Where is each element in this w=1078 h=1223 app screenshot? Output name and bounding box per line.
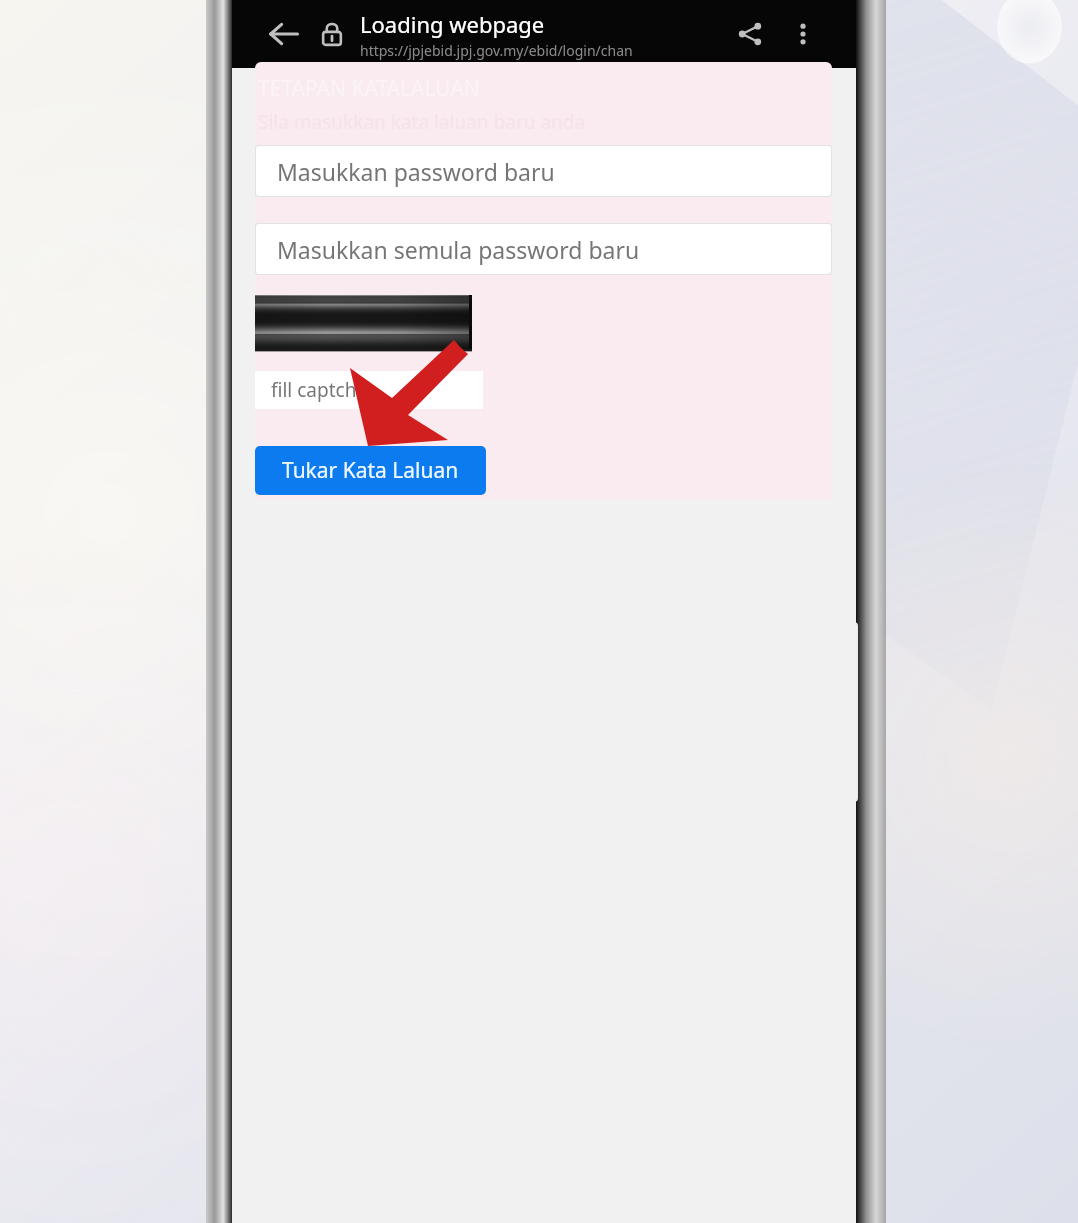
button[interactable]: fill captcha [255, 371, 483, 409]
button[interactable]: Masukkan password baru [255, 145, 832, 197]
button[interactable]: Tukar Kata Laluan [255, 446, 486, 495]
staticText: Masukkan password baru [277, 156, 555, 187]
staticText: Tukar Kata Laluan [282, 456, 459, 485]
staticText: Masukkan semula password baru [277, 234, 640, 265]
button[interactable]: Back [256, 6, 312, 62]
button[interactable]: Site security information [307, 9, 357, 59]
button[interactable]: Share [722, 6, 778, 62]
staticText: https://jpjebid.jpj.gov.my/ebid/login/ch… [360, 41, 633, 60]
button[interactable]: Masukkan semula password baru [255, 223, 832, 275]
button[interactable]: More options [778, 9, 828, 59]
staticText: fill captcha [271, 377, 368, 403]
staticText: Loading webpage [360, 9, 545, 39]
